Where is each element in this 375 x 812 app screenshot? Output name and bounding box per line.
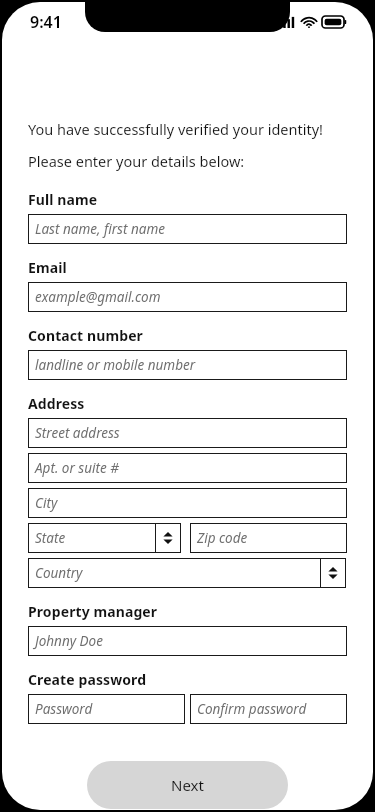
staticText: Full name [28,190,98,209]
staticText: Johnny Doe [35,632,103,650]
staticText: Street address [35,424,120,442]
staticText: Email [28,258,67,277]
button[interactable]: State [28,523,156,553]
button[interactable]: Johnny Doe [28,626,347,656]
staticText: Confirm password [197,700,307,718]
staticText: 9:41 [30,11,62,33]
staticText: Last name, first name [35,220,165,238]
staticText: Password [35,700,93,718]
staticText: Apt. or suite # [35,459,119,477]
button[interactable]: landline or mobile number [28,350,347,380]
button[interactable]: Country [28,558,321,588]
staticText: Next [171,775,204,795]
staticText: Contact number [28,326,143,345]
button[interactable]: example@gmail.com [28,282,347,312]
button[interactable]: Confirm password [190,694,347,724]
button[interactable]: Password [28,694,185,724]
button[interactable]: Open dropdown [155,523,181,553]
staticText: City [35,494,58,512]
staticText: Property manager [28,602,158,621]
staticText: Zip code [197,529,248,547]
button[interactable]: Next [87,761,288,809]
button[interactable]: City [28,488,347,518]
button[interactable]: Open dropdown [320,558,346,588]
staticText: State [35,529,66,547]
staticText: landline or mobile number [35,356,196,374]
staticText: example@gmail.com [35,288,161,306]
staticText: You have successfully verified your iden… [28,119,323,139]
button[interactable]: Zip code [190,523,347,553]
button[interactable]: Apt. or suite # [28,453,347,483]
staticText: Country [35,564,83,582]
button[interactable]: Last name, first name [28,214,347,244]
staticText: Address [28,394,85,413]
button[interactable]: Street address [28,418,347,448]
staticText: Please enter your details below: [28,151,245,171]
staticText: Create password [28,670,147,689]
